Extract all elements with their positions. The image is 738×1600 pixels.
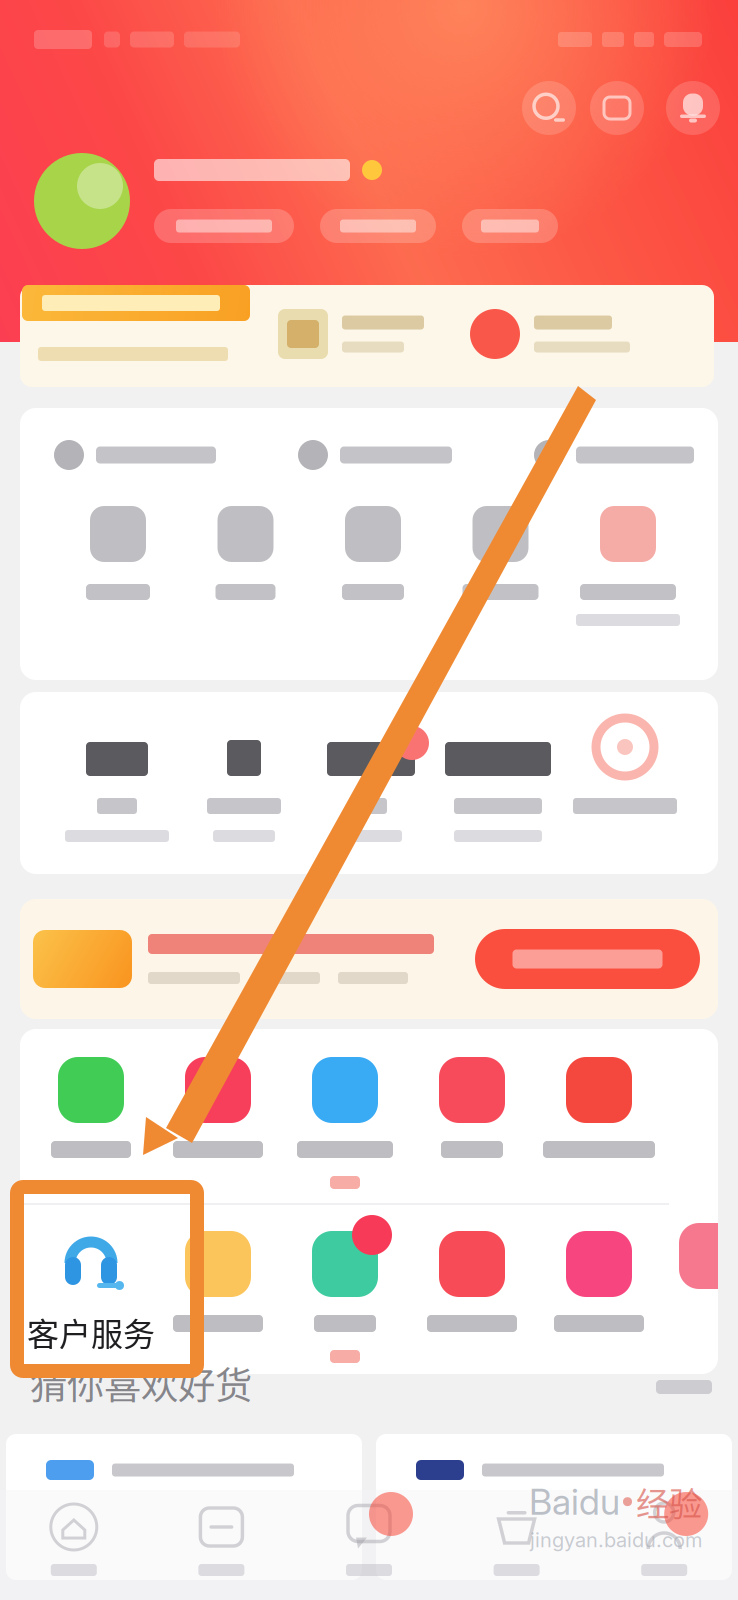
button[interactable]: App [162,1231,274,1332]
button[interactable]: App [416,1231,528,1332]
button[interactable]: Tab [443,1476,590,1600]
button[interactable]: Service [193,506,297,600]
button[interactable]: App [543,1057,655,1158]
button[interactable]: Stat [189,722,299,842]
button[interactable]: App [543,1231,655,1332]
staticText: Baidu [529,1480,620,1523]
button[interactable]: Stat [443,722,553,842]
button[interactable]: Promo one [278,309,424,359]
button[interactable]: Coupons [462,209,558,243]
button[interactable]: Tab [148,1476,295,1600]
button[interactable]: App [289,1057,401,1189]
button[interactable]: Points [320,209,436,243]
staticText: 经验 [636,1477,702,1526]
button[interactable]: Notifications [666,81,720,135]
button[interactable]: Tab [590,1476,738,1600]
button[interactable]: Service [448,506,552,600]
button[interactable]: Stat [62,722,172,842]
button[interactable]: Tab [295,1476,443,1600]
button[interactable]: Service [321,506,425,600]
button[interactable]: App [162,1057,274,1158]
button[interactable]: Search [522,81,576,135]
button[interactable]: Shortcut [298,440,452,470]
button[interactable]: Service [576,506,680,626]
staticText: jingyan.baidu.com [530,1528,702,1552]
button[interactable]: Tab [0,1476,148,1600]
button[interactable]: Stat [316,722,426,842]
button[interactable]: Stat [570,722,680,814]
button[interactable]: Promotion banner [20,899,718,1019]
button[interactable]: App [289,1231,401,1363]
button[interactable]: Scan [590,81,644,135]
button[interactable]: 客户服务 [35,1231,147,1355]
button[interactable]: Service [66,506,170,600]
staticText: 客户服务 [27,1309,155,1355]
button[interactable]: Feed item [6,1434,362,1580]
button[interactable]: Shortcut [534,440,694,470]
button[interactable]: Promo two [470,309,630,359]
button[interactable]: App [416,1057,528,1158]
button[interactable]: Feed item [376,1434,732,1580]
staticText: 猜你喜欢好货 [30,1356,252,1410]
button[interactable]: Shortcut [54,440,216,470]
button[interactable]: App [35,1057,147,1158]
button[interactable]: Member level [154,209,294,243]
